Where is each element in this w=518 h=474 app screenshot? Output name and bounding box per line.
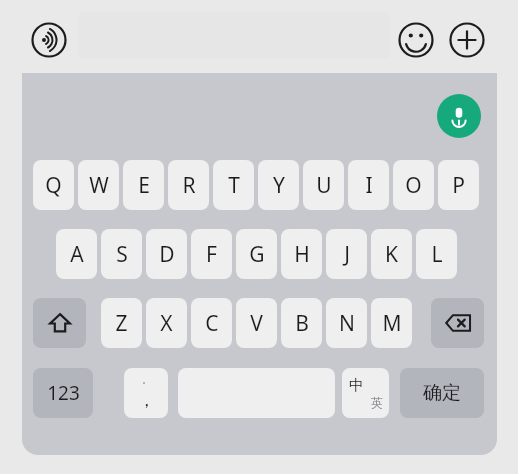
staticText: W [89, 171, 109, 200]
button[interactable]: T [213, 160, 254, 210]
button[interactable]: K [371, 229, 412, 279]
button[interactable]: R [168, 160, 209, 210]
button[interactable]: Shift [33, 298, 86, 348]
button[interactable]: 确定 [400, 368, 484, 418]
button[interactable]: L [416, 229, 457, 279]
staticText: P [452, 171, 465, 200]
staticText: E [138, 171, 150, 200]
button[interactable]: Chinese English toggle [342, 368, 389, 418]
staticText: S [116, 240, 128, 269]
button[interactable]: I [348, 160, 389, 210]
staticText: 中 [349, 376, 364, 395]
button[interactable]: Q [33, 160, 74, 210]
button[interactable]: Voice typing [437, 94, 481, 138]
staticText: C [205, 309, 219, 338]
button[interactable]: Voice input [31, 22, 67, 58]
button[interactable]: X [146, 298, 187, 348]
staticText: G [249, 240, 265, 269]
button[interactable]: Z [101, 298, 142, 348]
button[interactable]: S [101, 229, 142, 279]
button[interactable]: Add attachment [449, 22, 485, 58]
staticText: R [182, 171, 196, 200]
staticText: 确定 [423, 381, 461, 405]
staticText: I [365, 171, 373, 200]
button[interactable]: G [236, 229, 277, 279]
button[interactable]: D [146, 229, 187, 279]
button[interactable]: Space [178, 368, 335, 418]
button[interactable]: Y [258, 160, 299, 210]
staticText: 。 [142, 374, 151, 385]
button[interactable]: Punctuation [124, 368, 168, 418]
staticText: 英 [371, 395, 383, 410]
button[interactable]: C [191, 298, 232, 348]
staticText: O [405, 171, 422, 200]
button[interactable]: B [281, 298, 322, 348]
staticText: U [316, 171, 332, 200]
staticText: J [344, 240, 350, 269]
button[interactable]: V [236, 298, 277, 348]
button[interactable]: J [326, 229, 367, 279]
button[interactable]: F [191, 229, 232, 279]
staticText: V [250, 309, 263, 338]
staticText: 123 [47, 380, 80, 406]
staticText: A [70, 240, 84, 269]
staticText: M [382, 309, 402, 338]
staticText: L [431, 240, 443, 269]
staticText: Y [273, 171, 285, 200]
staticText: Z [115, 309, 128, 338]
button[interactable]: N [326, 298, 367, 348]
button[interactable]: O [393, 160, 434, 210]
button[interactable]: A [56, 229, 97, 279]
staticText: B [295, 309, 309, 338]
staticText: T [228, 171, 240, 200]
staticText: X [160, 309, 173, 338]
button[interactable]: H [281, 229, 322, 279]
button[interactable]: Emoji [398, 22, 434, 58]
staticText: D [159, 240, 175, 269]
staticText: Q [45, 171, 62, 200]
button[interactable]: U [303, 160, 344, 210]
button[interactable]: W [78, 160, 119, 210]
staticText: K [385, 240, 398, 269]
staticText: ， [138, 390, 155, 411]
button[interactable]: P [438, 160, 479, 210]
staticText: F [206, 240, 217, 269]
staticText: N [339, 309, 355, 338]
button[interactable]: M [371, 298, 412, 348]
button[interactable]: Backspace [431, 298, 484, 348]
button[interactable]: 123 [33, 368, 93, 418]
staticText: H [294, 240, 310, 269]
button[interactable]: E [123, 160, 164, 210]
